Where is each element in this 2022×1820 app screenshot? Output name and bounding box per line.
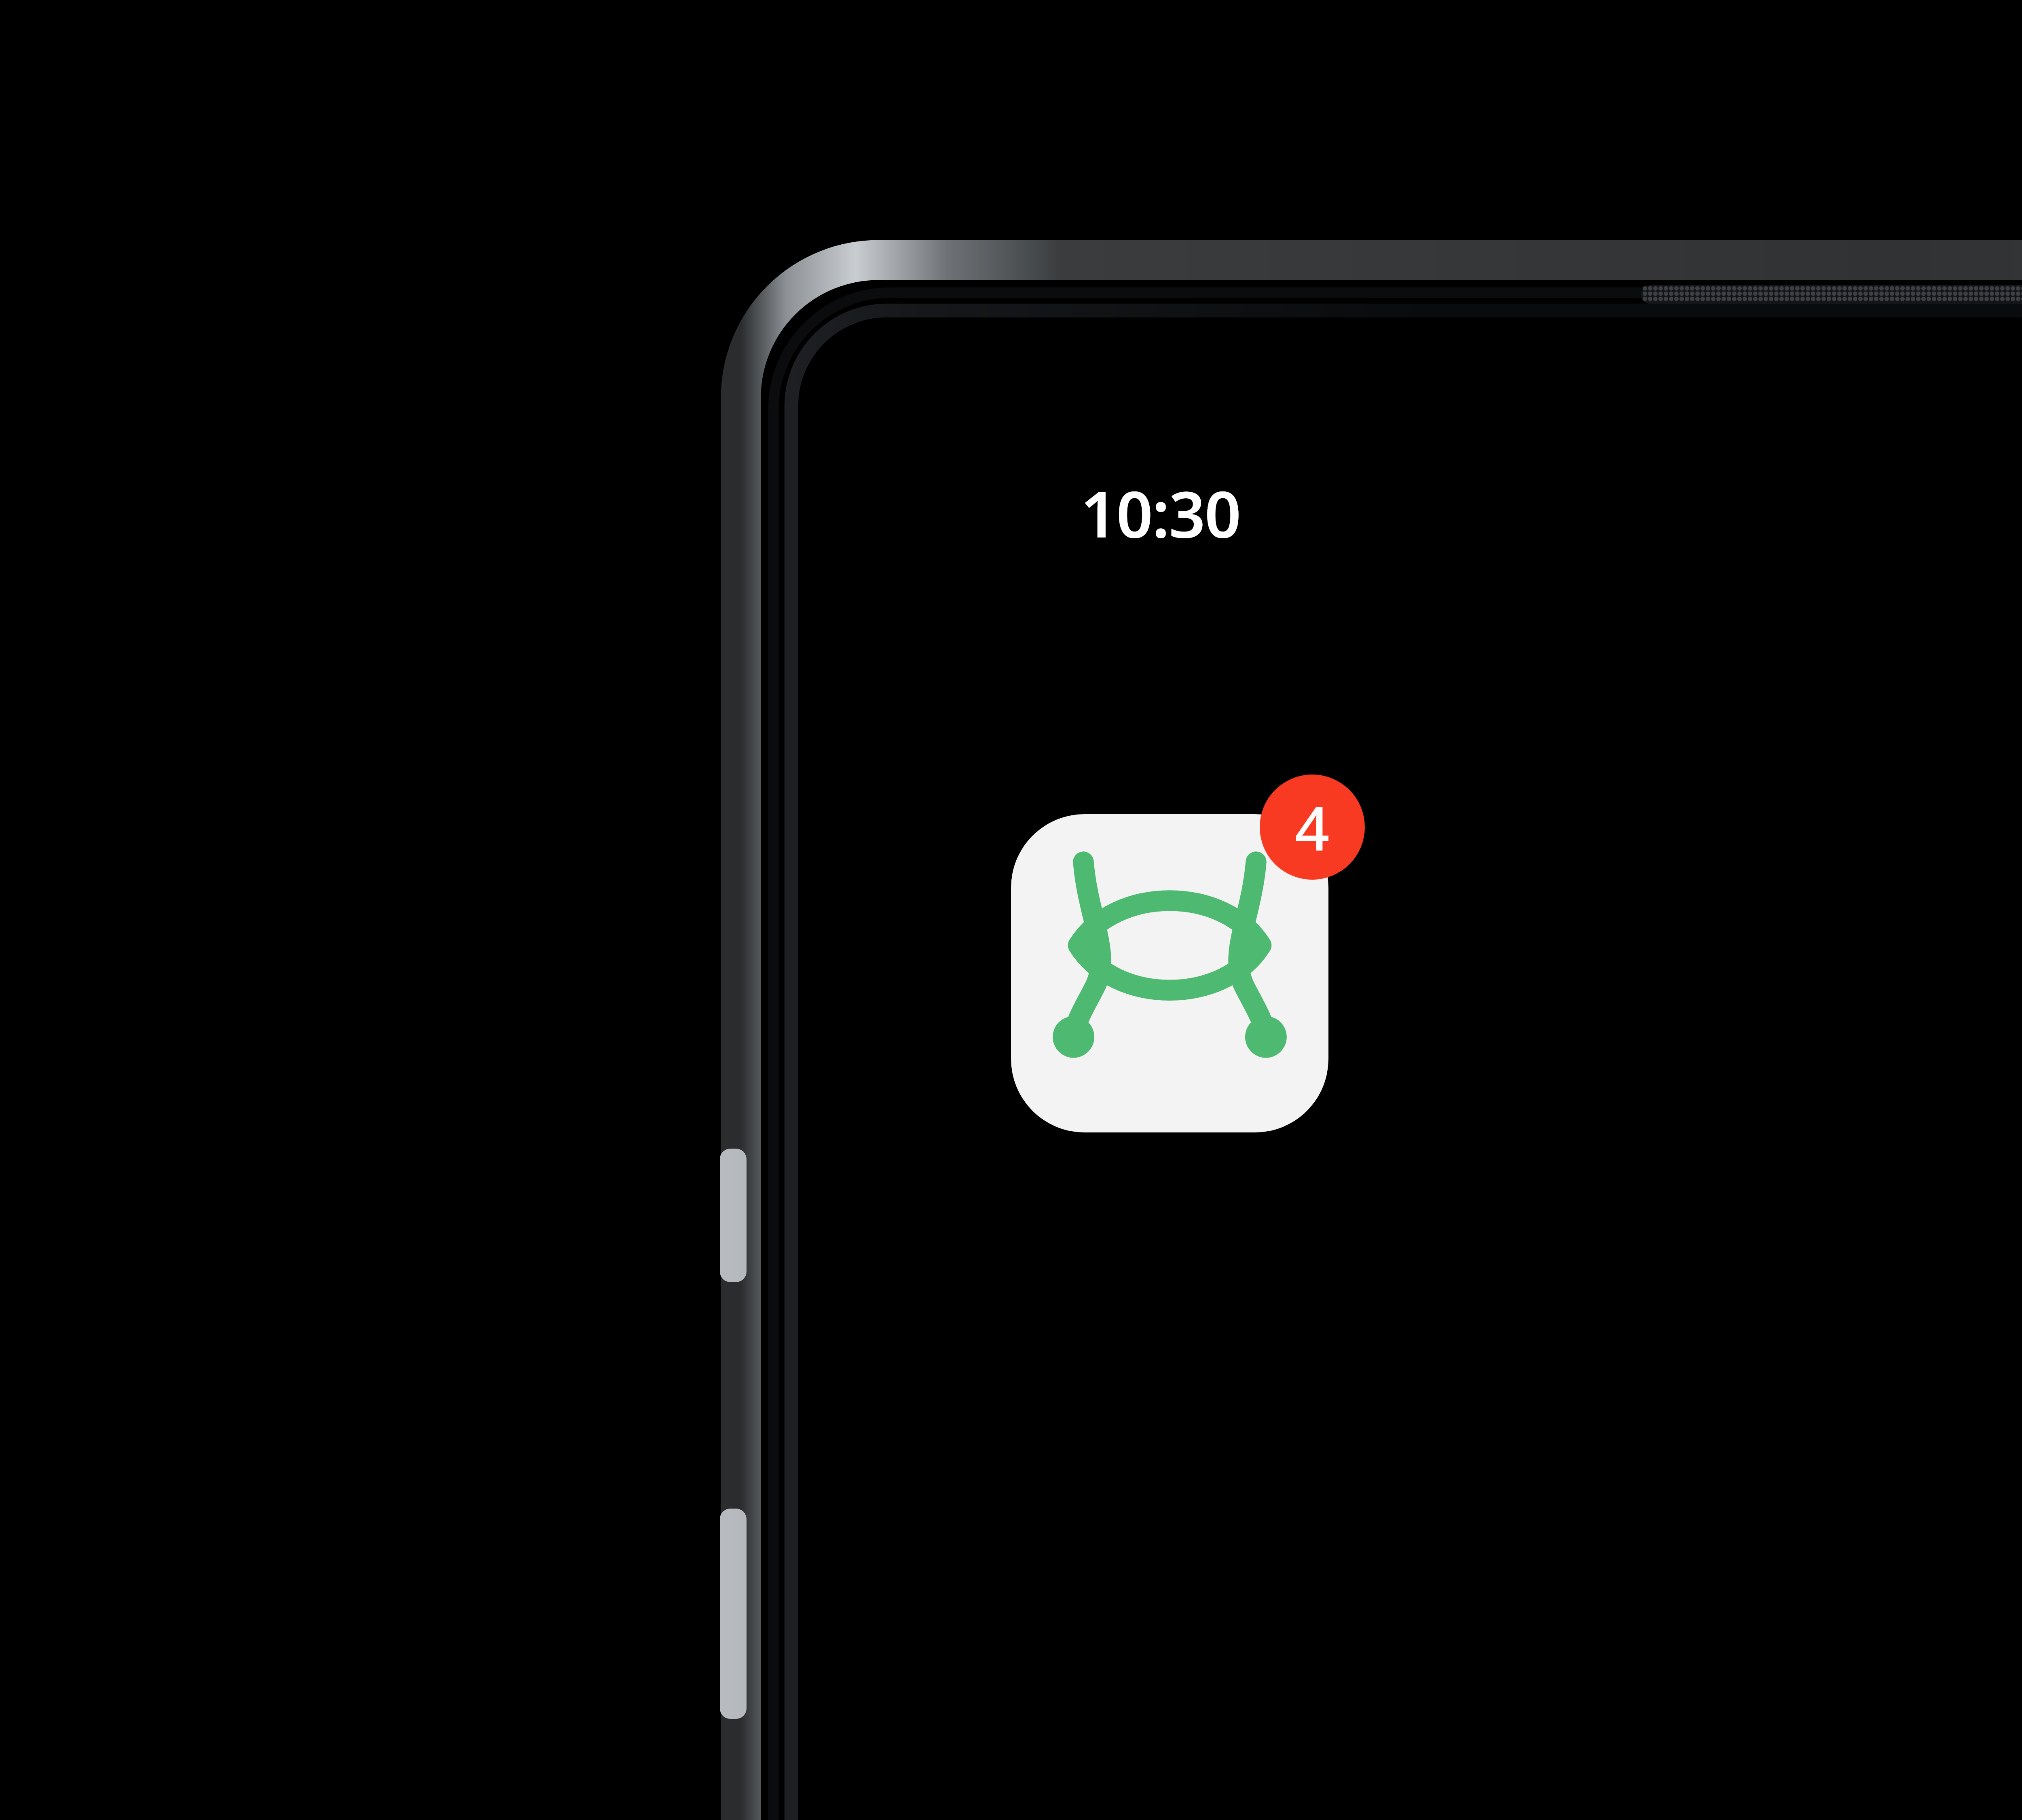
- staticText: 4: [1295, 786, 1330, 868]
- button[interactable]: Pen Tool app, 4 notifications: [1011, 814, 1328, 1132]
- staticText: 10:30: [1081, 469, 1241, 556]
- button[interactable]: 4 unread notifications: [1260, 775, 1365, 880]
